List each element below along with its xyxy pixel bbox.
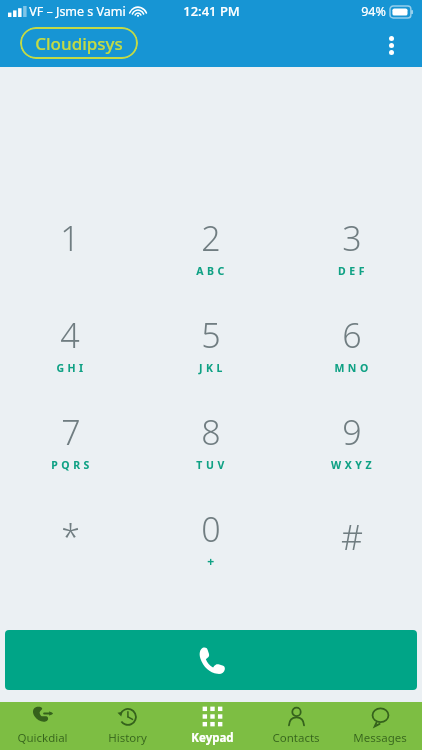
button[interactable]: # xyxy=(281,506,422,603)
staticText: 1 xyxy=(60,215,80,261)
button[interactable]: 6 xyxy=(281,312,422,409)
staticText: 0 xyxy=(201,506,221,552)
staticText: 2 xyxy=(201,215,221,261)
staticText: W X Y Z xyxy=(331,458,372,472)
button[interactable]: 2 xyxy=(140,215,281,312)
staticText: History xyxy=(108,730,147,746)
staticText: D E F xyxy=(338,264,365,278)
button[interactable]: History xyxy=(85,702,170,750)
staticText: M N O xyxy=(334,361,369,375)
button[interactable]: 9 xyxy=(281,409,422,506)
button[interactable]: Quickdial xyxy=(0,702,85,750)
staticText: Keypad xyxy=(191,730,234,746)
button[interactable]: Messages xyxy=(338,702,422,750)
button[interactable]: Contacts xyxy=(254,702,338,750)
staticText: VF – Jsme s Vami xyxy=(29,3,126,20)
staticText: 8 xyxy=(201,409,221,455)
button[interactable]: * xyxy=(0,506,140,603)
staticText: 9 xyxy=(342,409,362,455)
button[interactable]: 5 xyxy=(140,312,281,409)
staticText: + xyxy=(207,553,215,569)
staticText: Cloudipsys xyxy=(35,32,123,55)
staticText: J K L xyxy=(199,361,223,375)
staticText: Contacts xyxy=(272,730,320,746)
staticText: P Q R S xyxy=(51,458,90,472)
staticText: Messages xyxy=(353,730,407,746)
staticText: 7 xyxy=(61,409,81,455)
staticText: A B C xyxy=(196,264,225,278)
staticText: # xyxy=(341,514,363,560)
button[interactable]: Cloudipsys xyxy=(20,27,138,59)
staticText: 5 xyxy=(201,312,221,358)
staticText: G H I xyxy=(56,361,84,375)
staticText: T U V xyxy=(196,458,225,472)
button[interactable]: 8 xyxy=(140,409,281,506)
button[interactable]: 0 xyxy=(140,506,281,603)
staticText: 94% xyxy=(361,3,386,20)
staticText: 3 xyxy=(342,215,362,261)
button[interactable]: More options xyxy=(370,24,412,66)
staticText: * xyxy=(61,514,80,560)
button[interactable]: Call xyxy=(5,630,417,690)
staticText: Quickdial xyxy=(17,730,68,746)
staticText: 4 xyxy=(60,312,80,358)
button[interactable]: 4 xyxy=(0,312,140,409)
button[interactable]: 1 xyxy=(0,215,140,312)
staticText: 12:41 PM xyxy=(183,2,240,20)
button[interactable]: 7 xyxy=(0,409,140,506)
staticText: 6 xyxy=(342,312,362,358)
button[interactable]: 3 xyxy=(281,215,422,312)
button[interactable]: Keypad xyxy=(170,702,254,750)
